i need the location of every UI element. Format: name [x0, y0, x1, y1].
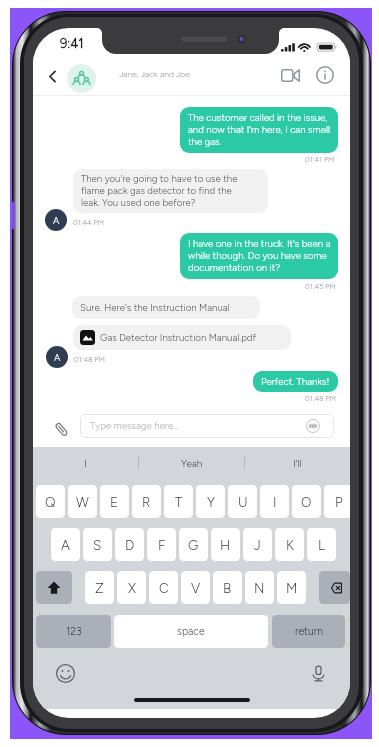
button[interactable]: Video call	[276, 65, 304, 86]
staticText: 123	[66, 625, 82, 638]
button[interactable]: Dictate	[306, 661, 330, 685]
staticText: 01:44 PM	[73, 218, 104, 227]
button[interactable]: Yeah	[139, 447, 244, 478]
staticText: Perfect. Thanks!	[261, 376, 330, 388]
button[interactable]: Emoji	[53, 661, 77, 685]
button[interactable]: P	[324, 485, 350, 518]
staticText: Then you're going to have to use the fla…	[81, 173, 244, 209]
staticText: T	[175, 494, 183, 510]
button[interactable]: O	[292, 485, 321, 518]
button[interactable]: B	[213, 571, 242, 604]
button[interactable]: J	[243, 528, 272, 561]
button[interactable]: return	[272, 615, 345, 648]
button[interactable]: S	[83, 528, 112, 561]
staticText: K	[286, 537, 294, 553]
staticText: Q	[45, 494, 56, 510]
staticText: Yeah	[181, 457, 203, 469]
staticText: G	[188, 537, 199, 553]
staticText: space	[177, 625, 205, 638]
button[interactable]: R	[132, 485, 161, 518]
staticText: 9:41	[60, 36, 84, 52]
staticText: return	[295, 625, 323, 638]
staticText: I'll	[293, 457, 302, 469]
staticText: S	[93, 537, 102, 553]
button[interactable]: N	[245, 571, 274, 604]
button[interactable]: V	[181, 571, 210, 604]
staticText: J	[254, 537, 261, 553]
staticText: I	[273, 494, 277, 510]
staticText: F	[158, 537, 166, 553]
button[interactable]: 123	[36, 615, 111, 648]
staticText: A	[61, 537, 70, 553]
button[interactable]: space	[114, 615, 268, 648]
button[interactable]: M	[277, 571, 306, 604]
staticText: D	[125, 537, 135, 553]
button[interactable]: Z	[85, 571, 114, 604]
button[interactable]: D	[115, 528, 144, 561]
button[interactable]: Info	[314, 64, 336, 86]
staticText: B	[223, 580, 232, 596]
staticText: W	[76, 494, 89, 510]
staticText: 01:48 PM	[74, 355, 105, 364]
button[interactable]: G	[179, 528, 208, 561]
staticText: A	[54, 352, 61, 363]
staticText: P	[335, 494, 343, 510]
button[interactable]: F	[147, 528, 176, 561]
button[interactable]: T	[164, 485, 193, 518]
staticText: Jane, Jack and Joe	[119, 69, 190, 79]
staticText: Gas Detector Instruction Manual.pdf	[100, 332, 256, 344]
staticText: Sure. Here's the Instruction Manual	[80, 302, 230, 314]
staticText: I have one in the truck. It's been a whi…	[188, 238, 334, 274]
button[interactable]: U	[228, 485, 257, 518]
button[interactable]: A	[51, 528, 80, 561]
staticText: E	[110, 494, 119, 510]
staticText: A	[53, 215, 60, 226]
staticText: Type message here...	[90, 420, 179, 432]
staticText: Z	[95, 580, 104, 596]
button[interactable]: Type message here...	[80, 414, 334, 438]
button[interactable]: E	[100, 485, 129, 518]
staticText: C	[159, 580, 169, 596]
button[interactable]: I	[33, 447, 138, 478]
button[interactable]: Backspace	[319, 571, 350, 604]
button[interactable]: Back	[40, 64, 64, 88]
staticText: I	[84, 457, 87, 469]
staticText: 01:41 PM	[305, 155, 335, 164]
button[interactable]: K	[275, 528, 304, 561]
button[interactable]: Group avatar	[67, 64, 96, 93]
button[interactable]: Y	[196, 485, 225, 518]
button[interactable]: W	[68, 485, 97, 518]
button[interactable]: Q	[36, 485, 65, 518]
button[interactable]: I	[260, 485, 289, 518]
staticText: The customer called in the issue, and no…	[188, 112, 334, 148]
staticText: M	[286, 580, 298, 596]
staticText: U	[238, 494, 248, 510]
button[interactable]: Attach file	[50, 418, 72, 440]
staticText: V	[191, 580, 201, 596]
button[interactable]: I'll	[245, 447, 350, 478]
staticText: R	[142, 494, 151, 510]
staticText: X	[128, 580, 136, 596]
staticText: 01:45 PM	[305, 282, 336, 291]
button[interactable]: L	[307, 528, 336, 561]
staticText: H	[220, 537, 231, 553]
staticText: 01:48 PM	[305, 394, 336, 403]
staticText: O	[301, 494, 312, 510]
staticText: L	[318, 537, 325, 553]
button[interactable]: X	[117, 571, 146, 604]
button[interactable]: H	[211, 528, 240, 561]
staticText: N	[254, 580, 265, 596]
button[interactable]: Shift	[36, 571, 72, 604]
staticText: Y	[207, 494, 215, 510]
button[interactable]: C	[149, 571, 178, 604]
button[interactable]: Gas Detector Instruction Manual.pdf	[73, 325, 291, 350]
